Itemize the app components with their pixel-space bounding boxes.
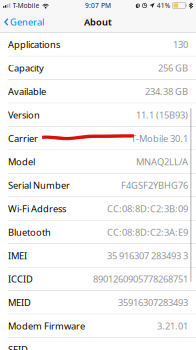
staticText: Serial Number — [8, 179, 70, 191]
staticText: 8901260905778268751 — [93, 273, 188, 285]
staticText: General — [10, 16, 44, 28]
button[interactable]: Carrier — [0, 127, 196, 150]
button[interactable]: SEID — [0, 338, 196, 350]
button[interactable]: Applications — [0, 33, 196, 56]
button[interactable]: MEID — [0, 291, 196, 314]
button[interactable]: Available — [0, 80, 196, 103]
staticText: T-Mobile 30.1 — [131, 132, 188, 144]
button[interactable]: General — [0, 11, 49, 33]
staticText: Model — [8, 155, 35, 168]
staticText: 130 — [173, 38, 188, 51]
staticText: T-Mobile — [13, 1, 40, 10]
staticText: MEID — [8, 296, 31, 309]
staticText: MNAQ2LL/A — [136, 155, 188, 168]
staticText: 3.21.01 — [157, 320, 188, 332]
staticText: Capacity — [8, 62, 44, 74]
button[interactable]: Bluetooth — [0, 221, 196, 244]
staticText: Modem Firmware — [8, 320, 85, 332]
staticText: 35 916307 283493 3 — [107, 249, 188, 262]
staticText: Bluetooth — [8, 226, 51, 238]
staticText: 35916307283493 — [118, 296, 188, 309]
staticText: Carrier — [8, 132, 38, 144]
staticText: About — [84, 16, 112, 28]
staticText: Applications — [8, 38, 60, 51]
button[interactable]: Version — [0, 103, 196, 127]
staticText: F4GSF2YBHG76 — [121, 179, 188, 191]
staticText: IMEI — [8, 249, 27, 262]
button[interactable]: Modem Firmware — [0, 314, 196, 338]
staticText: 41% — [157, 1, 171, 10]
staticText: 9:07 PM — [85, 1, 111, 10]
button[interactable]: Model — [0, 150, 196, 174]
staticText: Wi-Fi Address — [8, 202, 66, 215]
button[interactable]: Serial Number — [0, 174, 196, 197]
button[interactable]: Wi-Fi Address — [0, 197, 196, 220]
staticText: CC:08:8D:C2:3A:E9 — [107, 226, 188, 238]
staticText: CC:08:8D:C2:3B:09 — [107, 202, 188, 215]
button[interactable]: Capacity — [0, 56, 196, 80]
staticText: Version — [8, 109, 40, 121]
staticText: 11.1 (15B93) — [136, 109, 188, 121]
staticText: 234.38 GB — [145, 85, 188, 98]
button[interactable]: IMEI — [0, 244, 196, 267]
staticText: Available — [8, 85, 46, 98]
staticText: SEID — [8, 343, 28, 350]
staticText: ICCID — [8, 273, 33, 285]
button[interactable]: ICCID — [0, 267, 196, 291]
staticText: 256 GB — [158, 62, 188, 74]
